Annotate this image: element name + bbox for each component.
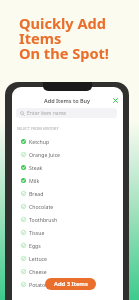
staticText: Ketchup	[29, 138, 50, 145]
staticText: Eggs	[29, 242, 41, 249]
staticText: Add Items to Buy	[44, 97, 91, 104]
button[interactable]: Potatoes	[12, 278, 123, 291]
staticText: Potatoes	[29, 281, 51, 288]
staticText: Orange Juice	[29, 151, 61, 158]
staticText: Enter item name	[27, 110, 67, 117]
button[interactable]: Cheese	[12, 265, 123, 278]
staticText: Toothbrush	[29, 216, 58, 223]
button[interactable]: Tissue	[12, 226, 123, 239]
staticText: Milk	[29, 177, 40, 184]
button[interactable]: Milk	[12, 174, 123, 187]
staticText: Add 3 Items	[54, 280, 88, 288]
button[interactable]: Chocolate	[12, 200, 123, 213]
staticText: Steak	[29, 164, 43, 171]
staticText: SELECT FROM HISTORY	[17, 126, 59, 131]
staticText: Tissue	[29, 229, 45, 236]
button[interactable]: Orange Juice	[12, 148, 123, 161]
staticText: Quickly Add Items On the Spot!	[19, 13, 109, 63]
staticText: Lettuce	[29, 255, 48, 262]
button[interactable]: Steak	[12, 161, 123, 174]
button[interactable]: Enter item name	[16, 108, 117, 118]
staticText: Cheese	[29, 268, 47, 275]
button[interactable]: Close	[111, 96, 119, 104]
button[interactable]: Lettuce	[12, 252, 123, 265]
button[interactable]: Eggs	[12, 239, 123, 252]
button[interactable]: Add 3 Items	[45, 278, 96, 290]
staticText: Chocolate	[29, 203, 54, 210]
staticText: Bread	[29, 190, 44, 197]
button[interactable]: Bread	[12, 187, 123, 200]
button[interactable]: Ketchup	[12, 135, 123, 148]
button[interactable]: Toothbrush	[12, 213, 123, 226]
